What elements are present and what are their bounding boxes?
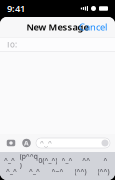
button[interactable]: Apps xyxy=(21,137,32,149)
button[interactable]: ^~^ xyxy=(46,166,69,177)
button[interactable]: ^_^ xyxy=(23,166,46,177)
staticText: (^^) xyxy=(97,167,109,176)
staticText: ^_^ xyxy=(6,167,17,176)
staticText: ^ xyxy=(103,156,107,165)
button[interactable]: 0(^_^) xyxy=(38,155,57,166)
staticText: (p^^q) xyxy=(20,152,38,169)
staticText: New Message xyxy=(26,21,88,33)
staticText: A xyxy=(24,139,29,147)
staticText: ^_^ xyxy=(4,156,15,165)
staticText: ^‿^ xyxy=(40,139,52,147)
button[interactable]: ^^ xyxy=(77,155,96,166)
staticText: ^~^ xyxy=(51,167,63,176)
button[interactable]: ^_^ xyxy=(57,155,77,166)
button[interactable]: ^ xyxy=(96,155,115,166)
button[interactable]: Take photo xyxy=(5,137,17,149)
staticText: 9:41 xyxy=(7,2,25,15)
staticText: ^_^ xyxy=(29,167,40,176)
staticText: (^^) xyxy=(74,167,86,176)
staticText: ^_^ xyxy=(62,156,73,165)
button[interactable]: Cancel xyxy=(75,18,111,36)
button[interactable]: ^_^ xyxy=(0,155,19,166)
button[interactable]: (^^) xyxy=(92,166,115,177)
staticText: Cancel xyxy=(79,21,107,33)
button[interactable]: (^^) xyxy=(69,166,92,177)
button[interactable]: To: xyxy=(0,37,115,51)
button[interactable]: ^_^ xyxy=(0,166,23,177)
button[interactable]: (p^^q) xyxy=(19,155,38,166)
staticText: ^^ xyxy=(82,156,90,165)
staticText: 0(^_^) xyxy=(38,156,57,165)
staticText: To: xyxy=(6,39,17,50)
